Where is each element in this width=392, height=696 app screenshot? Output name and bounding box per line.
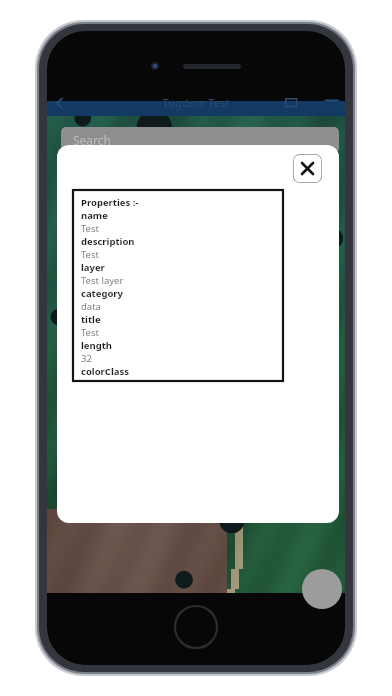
staticText: category xyxy=(81,287,123,300)
staticText: Red xyxy=(81,378,99,381)
staticText: Test xyxy=(81,222,99,235)
button[interactable]: More options xyxy=(323,94,341,109)
staticText: colorClass xyxy=(81,365,130,378)
button[interactable]: Layers xyxy=(283,94,301,109)
staticText: Test xyxy=(81,248,99,261)
staticText: description xyxy=(81,235,135,248)
staticText: 32 xyxy=(81,352,92,365)
staticText: data xyxy=(81,300,101,313)
staticText: length xyxy=(81,339,112,352)
staticText: Tugdem Test xyxy=(47,95,345,110)
staticText: title xyxy=(81,313,101,326)
staticText: layer xyxy=(81,261,105,274)
staticText: Test xyxy=(81,326,99,339)
staticText: name xyxy=(81,209,108,222)
staticText: Test layer xyxy=(81,274,124,287)
staticText: Properties :- xyxy=(81,196,139,209)
button[interactable]: Close xyxy=(293,154,322,183)
staticText: Search xyxy=(73,132,111,148)
button[interactable]: Home xyxy=(174,605,218,649)
button[interactable]: Search xyxy=(61,127,339,153)
button[interactable]: Add xyxy=(302,569,342,609)
button[interactable]: Back xyxy=(51,94,69,109)
